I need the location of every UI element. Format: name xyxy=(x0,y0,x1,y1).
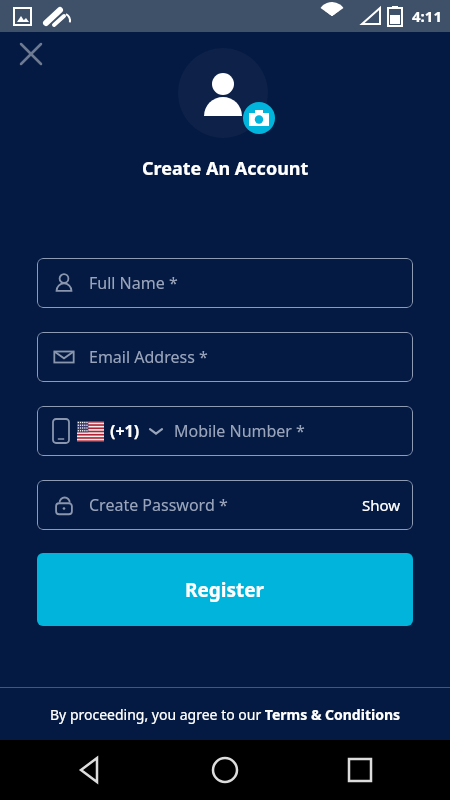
button[interactable]: Recent apps xyxy=(340,750,380,790)
staticText: Create An Account xyxy=(142,156,309,181)
button[interactable]: Full Name * xyxy=(37,258,413,308)
button[interactable]: Home xyxy=(205,750,245,790)
staticText: By proceeding, you agree to our Terms & … xyxy=(50,705,401,724)
button[interactable]: Change profile photo xyxy=(178,48,272,142)
button[interactable]: Create Password * xyxy=(37,480,413,530)
button[interactable]: Back xyxy=(70,750,110,790)
staticText: Register xyxy=(185,577,265,603)
staticText: Show xyxy=(362,495,401,515)
staticText: Mobile Number * xyxy=(174,420,305,442)
staticText: 4:11 xyxy=(412,6,442,26)
button[interactable]: Email Address * xyxy=(37,332,413,382)
button[interactable]: Register xyxy=(37,553,413,626)
button[interactable]: By proceeding, you agree to our Terms & … xyxy=(0,688,450,740)
staticText: Full Name * xyxy=(89,272,178,294)
staticText: Email Address * xyxy=(89,346,208,368)
staticText: Create Password * xyxy=(89,494,228,516)
button[interactable]: (+1) xyxy=(37,406,413,456)
staticText: (+1) xyxy=(110,420,140,442)
button[interactable]: Close xyxy=(14,37,48,71)
button[interactable]: Show xyxy=(362,495,401,515)
